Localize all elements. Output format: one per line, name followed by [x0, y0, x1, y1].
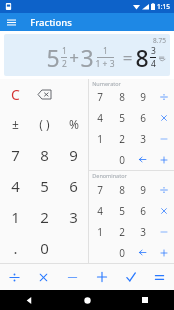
staticText: 3: [69, 207, 78, 227]
staticText: 9: [140, 183, 146, 197]
button[interactable]: ±: [0, 109, 30, 139]
button[interactable]: Backspace: [132, 149, 153, 170]
staticText: 2: [119, 132, 125, 146]
button[interactable]: 8.75: [4, 34, 170, 76]
button[interactable]: Subtract: [153, 221, 174, 242]
staticText: 2: [62, 58, 67, 70]
staticText: 5: [119, 204, 125, 218]
staticText: 0: [119, 153, 125, 167]
staticText: 6: [140, 111, 146, 125]
button[interactable]: 3: [132, 221, 153, 242]
staticText: 5: [119, 111, 125, 125]
button[interactable]: 8: [111, 179, 132, 200]
staticText: .: [13, 238, 18, 258]
staticText: ±: [12, 116, 19, 132]
button[interactable]: 1: [0, 201, 30, 232]
button[interactable]: Open navigation menu: [3, 14, 19, 30]
button[interactable]: %: [59, 109, 88, 139]
staticText: 8: [119, 90, 125, 104]
button[interactable]: 3: [132, 128, 153, 149]
button[interactable]: 4: [0, 170, 30, 201]
button[interactable]: ( ): [30, 109, 59, 139]
button[interactable]: Divide: [153, 179, 174, 200]
button[interactable]: Subtract: [153, 128, 174, 149]
staticText: 6: [69, 176, 78, 196]
staticText: 1:15: [157, 2, 170, 11]
button[interactable]: Add: [153, 149, 174, 170]
button[interactable]: Backspace: [132, 242, 153, 263]
button[interactable]: Divide: [0, 264, 29, 290]
staticText: 8: [135, 42, 149, 73]
button[interactable]: Add: [153, 242, 174, 263]
staticText: 8.75: [153, 36, 166, 45]
button[interactable]: 2: [30, 201, 59, 232]
staticText: 3: [140, 132, 146, 146]
staticText: Denominator: [92, 172, 127, 179]
staticText: 7: [97, 183, 103, 197]
button[interactable]: 9: [59, 139, 88, 170]
button[interactable]: 2: [111, 128, 132, 149]
button[interactable]: 8: [30, 139, 59, 170]
button[interactable]: 7: [89, 87, 111, 107]
staticText: 3: [140, 225, 146, 239]
button[interactable]: 5: [111, 200, 132, 221]
button[interactable]: .: [0, 232, 30, 263]
staticText: 2: [40, 207, 49, 227]
staticText: ( ): [39, 116, 50, 132]
staticText: 4: [97, 111, 103, 125]
button[interactable]: Home: [58, 290, 116, 310]
button[interactable]: 2: [111, 221, 132, 242]
button[interactable]: Multiply: [29, 264, 58, 290]
button[interactable]: 1: [89, 128, 111, 149]
staticText: 1: [11, 207, 20, 227]
button[interactable]: 8: [111, 87, 132, 107]
staticText: 4: [97, 204, 103, 218]
staticText: 1: [62, 45, 67, 57]
button[interactable]: C: [0, 79, 30, 109]
button[interactable]: 7: [0, 139, 30, 170]
button[interactable]: Confirm: [116, 264, 145, 290]
button[interactable]: 7: [89, 179, 111, 200]
button[interactable]: 6: [132, 107, 153, 128]
button[interactable]: 3: [59, 201, 88, 232]
staticText: 5: [40, 176, 49, 196]
staticText: 7: [11, 145, 20, 165]
button[interactable]: 1: [89, 221, 111, 242]
button[interactable]: Back: [0, 290, 58, 310]
staticText: 3: [80, 42, 94, 73]
staticText: 8: [40, 145, 49, 165]
staticText: 8: [119, 183, 125, 197]
button[interactable]: 4: [89, 200, 111, 221]
button[interactable]: Multiply: [153, 200, 174, 221]
button[interactable]: Subtract: [58, 264, 87, 290]
staticText: =: [116, 46, 135, 69]
staticText: C: [11, 85, 20, 104]
button[interactable]: 9: [132, 87, 153, 107]
staticText: 1 + 3: [95, 58, 115, 70]
staticText: 7: [97, 90, 103, 104]
staticText: Numerator: [92, 80, 121, 87]
staticText: Fractions: [30, 16, 72, 29]
button[interactable]: 4: [89, 107, 111, 128]
button[interactable]: 0: [30, 232, 59, 263]
staticText: 9: [140, 90, 146, 104]
staticText: %: [69, 116, 79, 132]
staticText: 1: [97, 132, 103, 146]
button[interactable]: 5: [30, 170, 59, 201]
button[interactable]: Multiply: [153, 107, 174, 128]
button[interactable]: Equals: [145, 264, 174, 290]
button[interactable]: Backspace: [30, 79, 59, 109]
button[interactable]: Add: [87, 264, 116, 290]
button[interactable]: 6: [59, 170, 88, 201]
button[interactable]: 0: [111, 149, 132, 170]
button[interactable]: Recent apps: [116, 290, 174, 310]
button[interactable]: 9: [132, 179, 153, 200]
staticText: 5: [46, 42, 60, 73]
button[interactable]: 6: [132, 200, 153, 221]
button[interactable]: 0: [111, 242, 132, 263]
button[interactable]: Divide: [153, 87, 174, 107]
staticText: 0: [119, 246, 125, 260]
button[interactable]: 5: [111, 107, 132, 128]
staticText: 1: [97, 225, 103, 239]
staticText: 2: [119, 225, 125, 239]
